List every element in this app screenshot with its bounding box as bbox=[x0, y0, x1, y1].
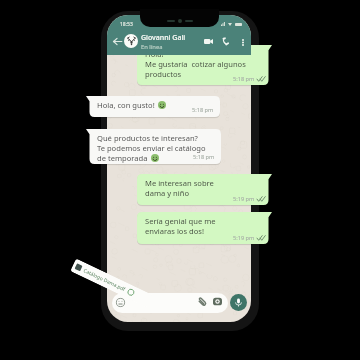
staticText: 5:19 pm bbox=[233, 234, 255, 242]
button[interactable] bbox=[137, 212, 272, 244]
staticText: Catálogo Dama.pdf bbox=[82, 267, 127, 293]
staticText: Hola! bbox=[145, 49, 164, 59]
button[interactable]: Camera bbox=[213, 297, 222, 306]
staticText: 5:18 pm bbox=[193, 153, 215, 161]
staticText: Giovanni Gali bbox=[141, 33, 186, 43]
staticText: 18:53 bbox=[120, 21, 133, 28]
staticText: de temporada bbox=[97, 153, 148, 163]
staticText: enviaras los dos! bbox=[145, 226, 205, 236]
button[interactable] bbox=[112, 293, 228, 313]
staticText: Me gustaría cotizar algunos bbox=[145, 59, 246, 69]
staticText: Me interesan sobre bbox=[145, 178, 214, 188]
button[interactable]: Catálogo Dama.pdf bbox=[70, 258, 153, 308]
staticText: Hola, con gusto! bbox=[97, 100, 155, 110]
staticText: Qué productos te interesan? bbox=[97, 133, 198, 143]
button[interactable]: Giovanni Gali bbox=[141, 33, 186, 51]
staticText: dama y niño bbox=[145, 188, 190, 198]
staticText: 5:18 pm bbox=[192, 106, 214, 114]
staticText: Te podemos enviar el catálogo bbox=[97, 143, 206, 153]
staticText: 5:19 pm bbox=[233, 195, 255, 203]
button[interactable]: Contact photo bbox=[124, 34, 138, 48]
button[interactable]: Attach bbox=[197, 297, 207, 307]
button[interactable]: Video call bbox=[204, 39, 213, 44]
button[interactable] bbox=[137, 174, 272, 205]
button[interactable] bbox=[86, 129, 221, 164]
button[interactable]: More options bbox=[242, 39, 244, 46]
button[interactable] bbox=[86, 96, 220, 117]
button[interactable]: Back bbox=[113, 37, 122, 46]
staticText: Sería genial que me bbox=[145, 216, 216, 226]
button[interactable] bbox=[137, 45, 272, 85]
staticText: En línea bbox=[141, 43, 163, 51]
staticText: 5:18 pm bbox=[233, 75, 255, 83]
button[interactable]: Voice call bbox=[222, 38, 229, 45]
staticText: productos bbox=[145, 69, 182, 79]
button[interactable]: Voice message bbox=[230, 294, 247, 311]
